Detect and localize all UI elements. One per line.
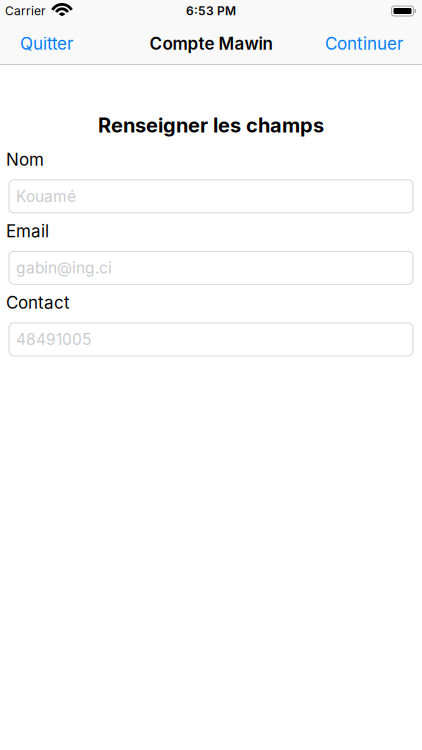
staticText: Email (6, 221, 49, 241)
staticText: Kouamé (16, 187, 76, 206)
button[interactable]: Quitter (0, 33, 73, 54)
staticText: Continuer (325, 33, 403, 54)
button[interactable]: Continuer (325, 33, 422, 54)
button[interactable]: Kouamé (0, 180, 422, 213)
staticText: Carrier (5, 4, 46, 18)
staticText: Quitter (20, 33, 73, 54)
staticText: 48491005 (16, 330, 91, 349)
staticText: Renseigner les champs (98, 113, 324, 137)
button[interactable]: gabin@ing.ci (0, 251, 422, 284)
staticText: Contact (6, 292, 70, 313)
staticText: gabin@ing.ci (16, 258, 112, 277)
button[interactable]: 48491005 (0, 323, 422, 356)
staticText: Compte Mawin (149, 33, 272, 54)
staticText: Nom (6, 149, 44, 170)
staticText: 6:53 PM (186, 4, 236, 18)
